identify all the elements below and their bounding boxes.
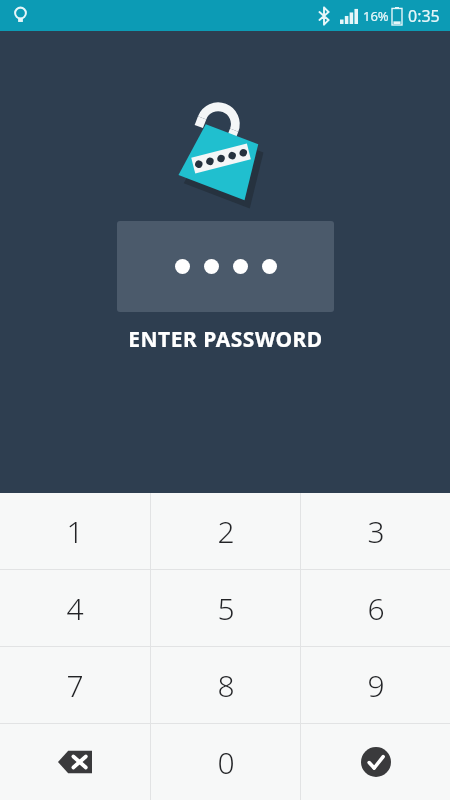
button[interactable]: 0 xyxy=(151,724,300,800)
staticText: 6 xyxy=(367,588,385,629)
staticText: 0:35 xyxy=(408,5,440,27)
button[interactable]: 4 xyxy=(0,570,150,646)
button[interactable]: 2 xyxy=(151,493,300,569)
staticText: ENTER PASSWORD xyxy=(128,325,323,354)
staticText: 9 xyxy=(367,665,385,706)
button[interactable]: 9 xyxy=(301,647,450,723)
button[interactable]: 3 xyxy=(301,493,450,569)
staticText: 8 xyxy=(217,665,235,706)
staticText: 3 xyxy=(367,511,385,552)
button[interactable]: Confirm xyxy=(301,724,450,800)
button[interactable]: 5 xyxy=(151,570,300,646)
button[interactable]: 8 xyxy=(151,647,300,723)
staticText: 0 xyxy=(217,742,235,783)
button[interactable]: 6 xyxy=(301,570,450,646)
button[interactable]: 7 xyxy=(0,647,150,723)
button[interactable]: Backspace xyxy=(0,724,150,800)
button[interactable] xyxy=(117,221,334,312)
staticText: 1 xyxy=(66,511,84,552)
staticText: 4 xyxy=(66,588,84,629)
staticText: 2 xyxy=(217,511,235,552)
staticText: 5 xyxy=(217,588,235,629)
staticText: 7 xyxy=(66,665,84,706)
staticText: 16% xyxy=(363,7,389,25)
button[interactable]: 1 xyxy=(0,493,150,569)
